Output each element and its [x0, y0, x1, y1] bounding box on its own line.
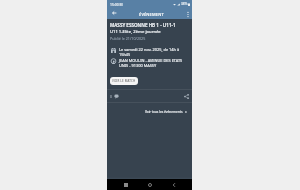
staticText: VOIR LE MATCH — [112, 79, 136, 83]
staticText: ÉVÉNEMENT — [139, 12, 164, 17]
staticText: 38% — [181, 2, 188, 6]
staticText: JEAN MOULIN - AVENUE DES ETATS UNIS - 91… — [119, 58, 186, 68]
button[interactable]: More options — [183, 10, 192, 19]
staticText: 15:00 M — [110, 2, 123, 7]
button[interactable]: Back — [109, 8, 118, 17]
staticText: » — [185, 110, 187, 114]
staticText: Le samedi 22 nov. 2025, de 14h à 15h45 — [119, 47, 186, 57]
button[interactable]: Share — [183, 93, 190, 100]
button[interactable]: Recent apps — [120, 179, 131, 190]
button[interactable]: Home — [144, 179, 155, 190]
button[interactable]: VOIR LE MATCH — [110, 77, 138, 85]
staticText: MASSY ESSONNE HB 1 - U11-1 — [110, 22, 176, 28]
button[interactable]: 0 — [109, 94, 120, 99]
button[interactable]: Voir tous les événements — [143, 108, 189, 116]
staticText: U11 1-Elite, 2ème journée — [110, 29, 161, 35]
staticText: 0 — [110, 94, 112, 99]
staticText: Publié le 21/10/2025 — [110, 36, 146, 41]
button[interactable]: Back — [168, 179, 179, 190]
staticText: Voir tous les événements — [145, 110, 183, 114]
